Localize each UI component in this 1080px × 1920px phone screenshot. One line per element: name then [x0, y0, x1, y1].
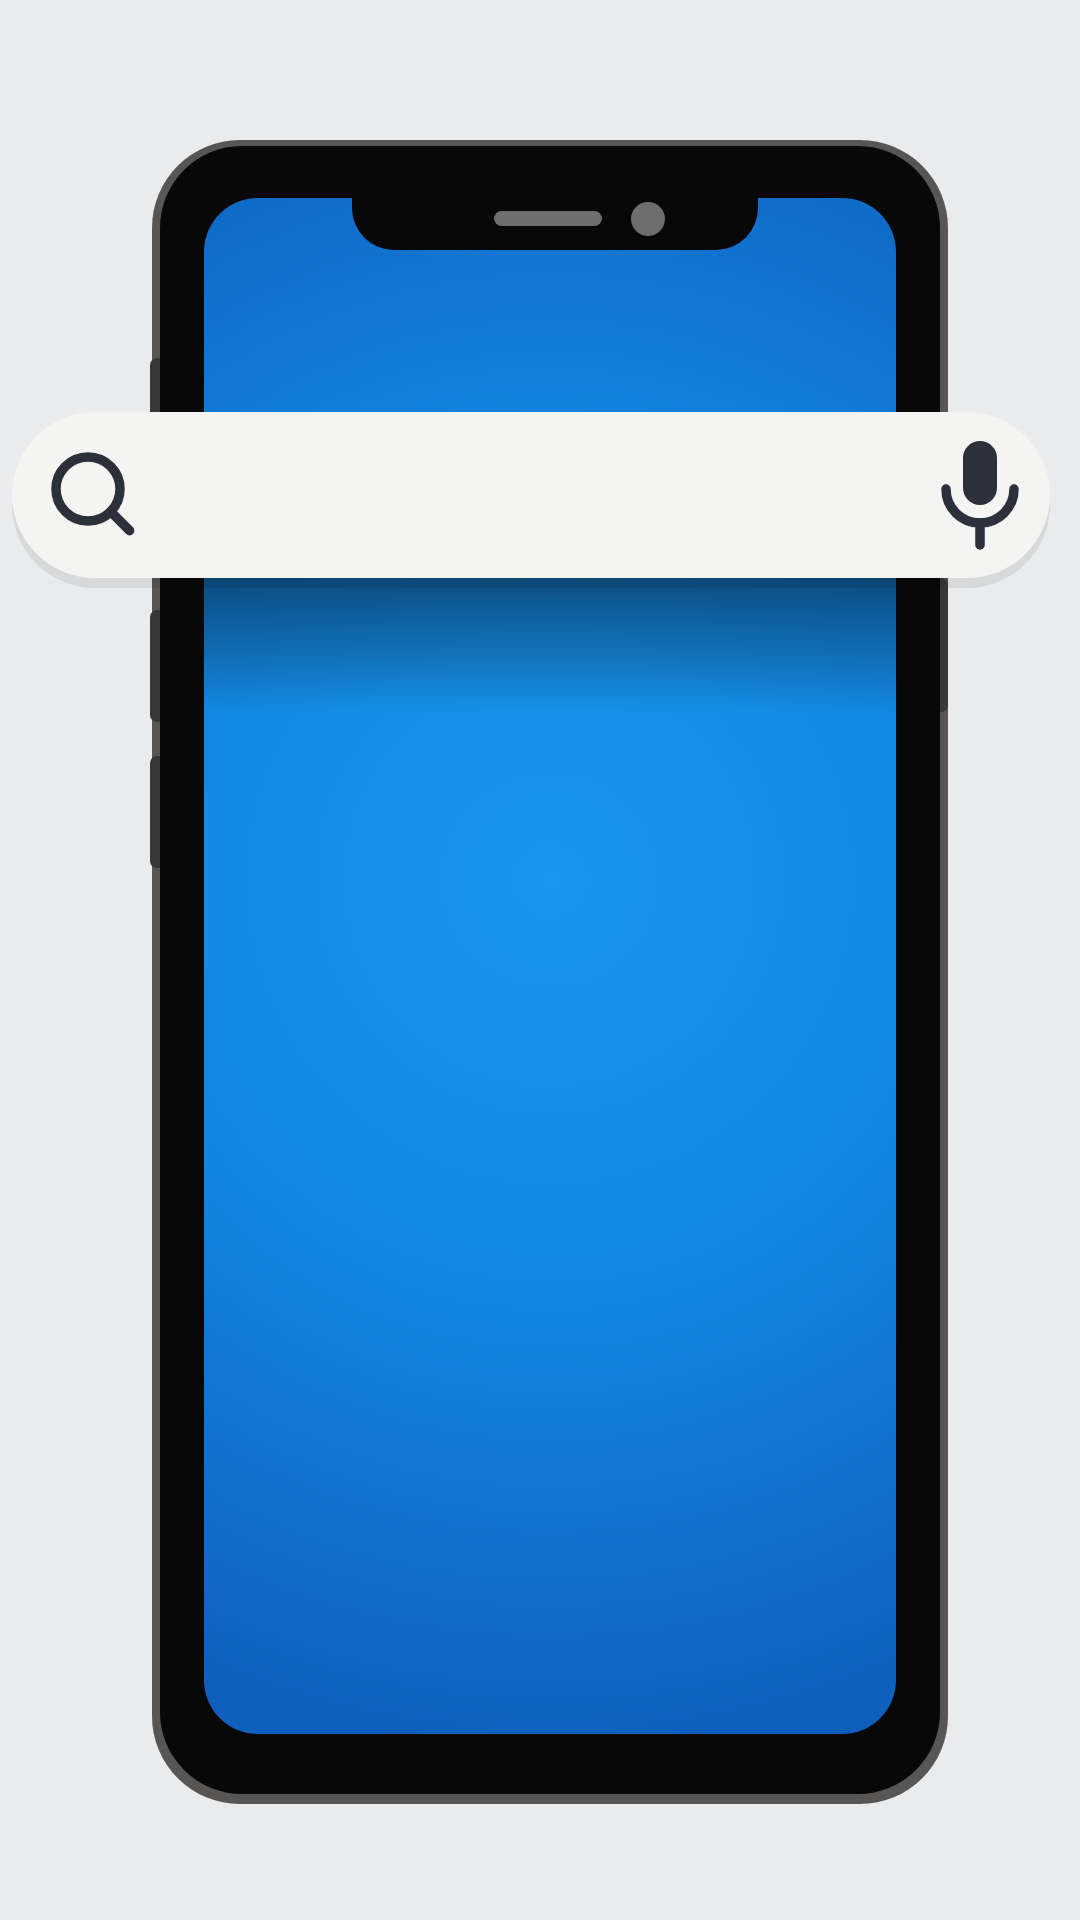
button[interactable]: Search: [12, 412, 162, 578]
button[interactable]: Voice search: [890, 412, 1050, 578]
